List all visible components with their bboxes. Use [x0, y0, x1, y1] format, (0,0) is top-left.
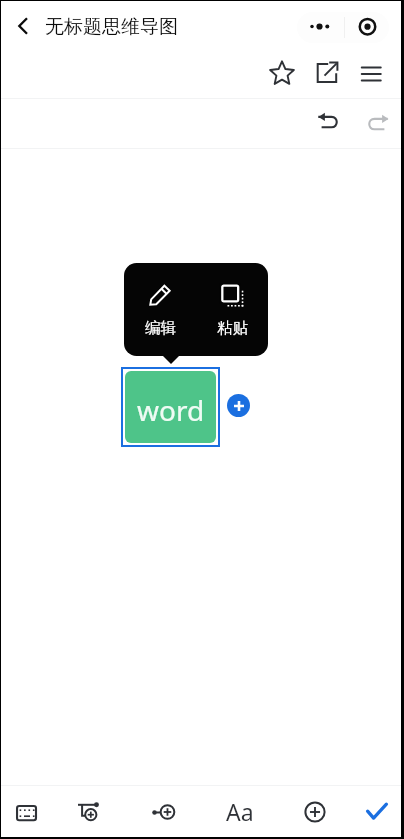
button[interactable]: Close [346, 12, 388, 43]
button[interactable]: Keyboard [5, 786, 49, 837]
button[interactable]: Redo [356, 102, 400, 146]
button[interactable]: More options [298, 12, 344, 43]
button[interactable]: Add sibling node [142, 786, 186, 837]
button[interactable]: Done [355, 786, 399, 837]
button[interactable]: 粘贴 [196, 263, 268, 356]
button[interactable]: Add child node [66, 786, 110, 837]
button[interactable]: Back [4, 5, 44, 49]
button[interactable]: Add node [227, 394, 250, 417]
button[interactable]: Insert [293, 786, 337, 837]
button[interactable]: Share [305, 51, 349, 95]
staticText: word [137, 391, 205, 429]
button[interactable]: 编辑 [124, 263, 196, 356]
button[interactable]: word [125, 371, 216, 443]
button[interactable]: Menu [349, 52, 393, 96]
button[interactable]: Undo [306, 100, 350, 144]
button[interactable]: Favorite [260, 51, 304, 95]
staticText: 粘贴 [217, 318, 248, 338]
staticText: 无标题思维导图 [45, 15, 178, 39]
staticText: Aa [226, 796, 254, 827]
button[interactable]: Aa [218, 786, 262, 837]
staticText: 编辑 [145, 318, 176, 338]
